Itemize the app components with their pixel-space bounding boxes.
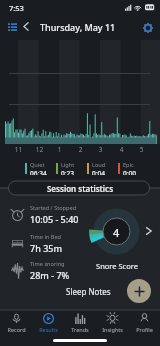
button[interactable]: Menu	[4, 19, 21, 36]
staticText: Record	[7, 326, 26, 333]
staticText: 7:53	[9, 3, 24, 13]
staticText: Time in Bed	[30, 233, 61, 241]
staticText: Started / Stopped	[30, 204, 77, 212]
button[interactable]: Record	[0, 310, 32, 336]
staticText: 06:34	[30, 169, 47, 175]
staticText: 4	[113, 225, 120, 240]
staticText: 0:04	[92, 169, 106, 175]
staticText: 0:23	[61, 169, 75, 175]
staticText: 12	[35, 145, 44, 154]
other: Open snore score	[144, 225, 154, 237]
staticText: 1	[55, 145, 64, 154]
button[interactable]: Time snoring	[10, 258, 90, 283]
staticText: Trends	[71, 326, 89, 333]
staticText: Snore Score	[88, 261, 146, 271]
staticText: Sleep Notes	[66, 286, 111, 297]
button[interactable]: Results	[32, 310, 64, 336]
staticText: Profile	[136, 326, 153, 333]
staticText: 4	[117, 145, 126, 154]
button[interactable]: Started / Stopped	[10, 202, 90, 227]
button[interactable]: Settings	[139, 19, 156, 36]
staticText: 2	[76, 145, 85, 154]
button[interactable]: Epic	[118, 161, 137, 175]
staticText: Epic	[123, 161, 134, 169]
staticText: Session statistics	[0, 183, 160, 194]
button[interactable]: Add sleep note	[127, 279, 151, 303]
button[interactable]: Time in Bed	[10, 231, 90, 256]
button[interactable]: Profile	[128, 310, 160, 336]
staticText: 5	[137, 145, 146, 154]
staticText: Quiet	[30, 161, 45, 169]
staticText: Loud	[92, 161, 106, 169]
staticText: 7h 35m	[30, 242, 62, 254]
staticText: 0:00	[123, 169, 137, 175]
staticText: 28m - 7%	[30, 269, 70, 281]
button[interactable]: Light	[56, 161, 75, 175]
staticText: Insights	[102, 326, 123, 333]
button[interactable]: Insights	[96, 310, 128, 336]
staticText: Time snoring	[30, 260, 65, 268]
staticText: Results	[39, 326, 58, 333]
staticText: 11	[14, 145, 23, 154]
staticText: Thursday, May 11	[40, 21, 116, 33]
button[interactable]: Back	[19, 19, 33, 33]
button[interactable]: Loud	[87, 161, 106, 175]
staticText: 3	[96, 145, 105, 154]
staticText: 10:05 - 5:40	[30, 213, 79, 225]
button[interactable]: Trends	[64, 310, 96, 336]
button[interactable]: Quiet	[25, 161, 47, 175]
staticText: Light	[61, 161, 75, 169]
button[interactable]: 4	[88, 202, 146, 274]
